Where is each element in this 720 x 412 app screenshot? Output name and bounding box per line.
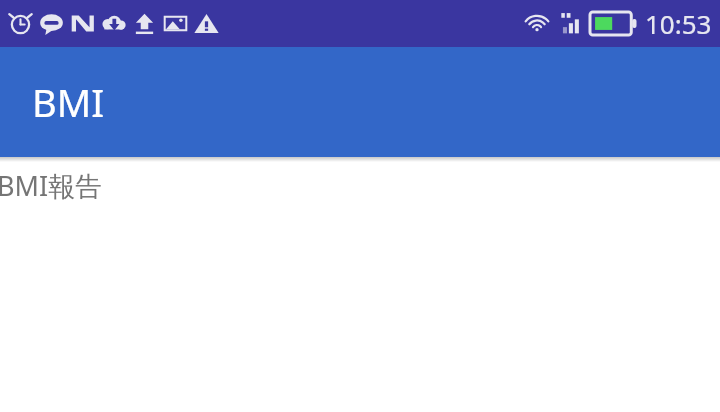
staticText: 10:53 [645, 6, 712, 41]
staticText: BMI [32, 76, 105, 128]
button[interactable]: BMI [0, 47, 720, 157]
staticText: BMI報告 [0, 167, 103, 204]
